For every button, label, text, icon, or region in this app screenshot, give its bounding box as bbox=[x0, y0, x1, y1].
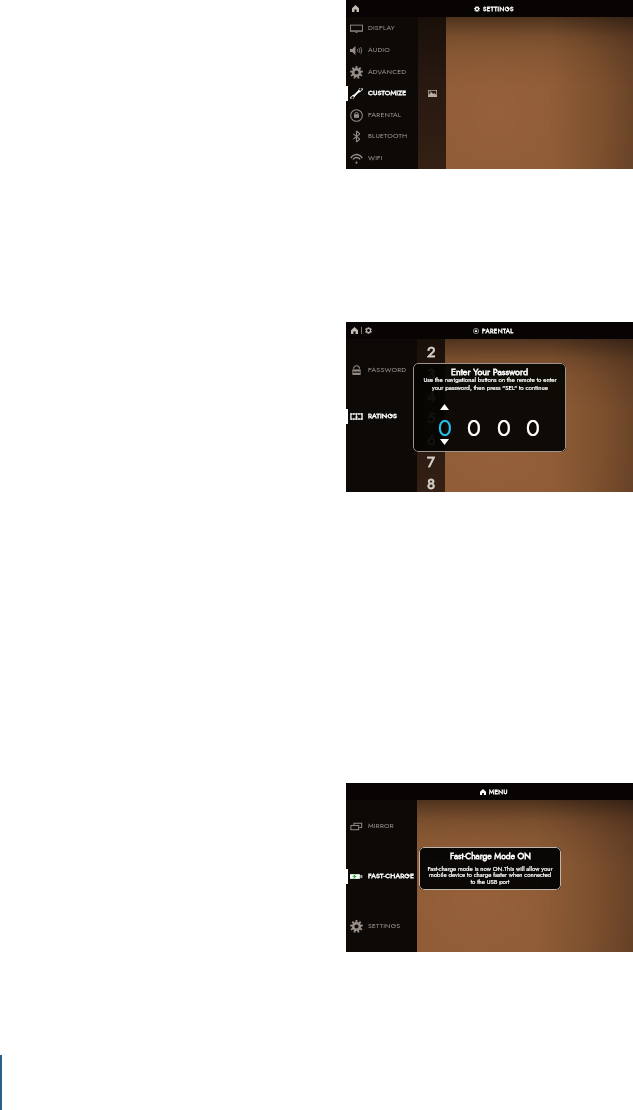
button[interactable]: RATINGS bbox=[346, 407, 418, 425]
staticText: BLUETOOTH bbox=[368, 131, 408, 141]
staticText: 5 bbox=[427, 407, 436, 426]
staticText: 7 bbox=[427, 451, 435, 470]
staticText: FAST-CHARGE bbox=[368, 871, 415, 881]
staticText: MIRROR bbox=[368, 821, 394, 831]
button[interactable]: MIRROR bbox=[346, 817, 418, 835]
staticText: Fast-charge mode is now ON.This will all… bbox=[427, 864, 553, 887]
staticText: PASSWORD bbox=[368, 365, 407, 375]
staticText: 8 bbox=[427, 473, 436, 492]
staticText: SETTINGS bbox=[368, 921, 401, 931]
button[interactable]: PARENTAL bbox=[346, 106, 418, 124]
button[interactable]: SETTINGS bbox=[346, 917, 418, 935]
staticText: DISPLAY bbox=[368, 23, 395, 33]
button[interactable]: DISPLAY bbox=[346, 19, 418, 37]
staticText: 0 bbox=[467, 411, 481, 439]
staticText: 2 bbox=[427, 341, 436, 360]
staticText: SETTINGS bbox=[483, 4, 514, 13]
button[interactable]: CUSTOMIZE bbox=[346, 84, 418, 102]
button[interactable]: FAST-CHARGE bbox=[346, 867, 418, 885]
staticText: PARENTAL bbox=[368, 110, 402, 120]
staticText: Enter Your Password bbox=[451, 365, 529, 378]
staticText: 0 bbox=[497, 411, 511, 439]
button[interactable]: BLUETOOTH bbox=[346, 127, 418, 145]
staticText: CUSTOMIZE bbox=[368, 88, 407, 98]
staticText: RATINGS bbox=[368, 411, 398, 421]
staticText: 0 bbox=[438, 411, 452, 439]
staticText: Fast-Charge Mode ON bbox=[450, 850, 531, 862]
staticText: MENU bbox=[489, 787, 508, 796]
button[interactable]: Settings bbox=[365, 327, 372, 334]
staticText: 0 bbox=[526, 411, 540, 439]
button[interactable]: Home bbox=[352, 5, 359, 12]
staticText: ADVANCED bbox=[368, 67, 407, 77]
button[interactable]: Home bbox=[351, 327, 358, 334]
staticText: 6 bbox=[427, 429, 436, 448]
staticText: 3 bbox=[427, 363, 436, 382]
staticText: PARENTAL bbox=[482, 326, 514, 335]
staticText: AUDIO bbox=[368, 45, 391, 55]
button[interactable]: WIFI bbox=[346, 149, 418, 167]
button[interactable]: ADVANCED bbox=[346, 63, 418, 81]
button[interactable]: AUDIO bbox=[346, 41, 418, 59]
staticText: Use the navigational buttons on the remo… bbox=[423, 375, 557, 392]
button[interactable]: PASSWORD bbox=[346, 361, 418, 379]
staticText: 4 bbox=[427, 385, 436, 404]
staticText: WIFI bbox=[368, 153, 383, 163]
